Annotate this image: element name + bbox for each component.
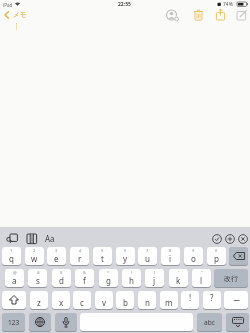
button[interactable]: 7: [138, 247, 157, 265]
staticText: x: [59, 297, 64, 308]
staticText: (: [131, 270, 133, 275]
button[interactable]: v: [95, 291, 113, 309]
staticText: 22:55: [118, 1, 131, 8]
staticText: 74%: [223, 1, 233, 8]
button[interactable]: [55, 313, 77, 331]
button[interactable]: (: [122, 269, 141, 287]
staticText: l: [200, 275, 203, 286]
button[interactable]: 0: [207, 247, 226, 265]
staticText: z: [37, 297, 41, 308]
button[interactable]: *: [99, 269, 118, 287]
button[interactable]: [192, 9, 205, 21]
staticText: &: [83, 270, 86, 275]
staticText: abc: [204, 318, 215, 327]
button[interactable]: [80, 313, 193, 331]
staticText: 123: [8, 318, 20, 327]
button[interactable]: [236, 9, 249, 21]
button[interactable]: [26, 233, 38, 245]
staticText: w: [31, 253, 38, 264]
staticText: c: [80, 297, 84, 308]
button[interactable]: x: [52, 291, 70, 309]
button[interactable]: @: [5, 269, 24, 287]
staticText: Aa: [45, 233, 55, 244]
button[interactable]: !: [181, 291, 199, 309]
button[interactable]: 123: [2, 313, 25, 331]
staticText: 改行: [224, 274, 238, 283]
staticText: 8: [169, 248, 172, 253]
staticText: .: [211, 303, 213, 308]
staticText: 4: [79, 248, 82, 253]
button[interactable]: n: [138, 291, 156, 309]
button[interactable]: b: [116, 291, 134, 309]
button[interactable]: z: [30, 291, 48, 309]
staticText: n: [145, 297, 150, 308]
button[interactable]: #: [28, 269, 47, 287]
staticText: o: [191, 253, 196, 264]
staticText: ): [154, 270, 156, 275]
button[interactable]: [229, 247, 248, 265]
button[interactable]: c: [73, 291, 91, 309]
button[interactable]: [165, 9, 181, 22]
button[interactable]: ': [169, 269, 188, 287]
staticText: v: [102, 297, 107, 308]
staticText: メモ: [13, 11, 27, 19]
button[interactable]: Aa: [45, 232, 61, 245]
staticText: 5: [101, 248, 104, 253]
staticText: e: [54, 253, 59, 264]
button[interactable]: m: [160, 291, 178, 309]
button[interactable]: [214, 8, 227, 21]
staticText: 3: [55, 248, 58, 253]
staticText: s: [36, 275, 40, 286]
staticText: !: [189, 292, 192, 303]
button[interactable]: 4: [70, 247, 89, 265]
button[interactable]: [29, 313, 51, 331]
staticText: 2: [33, 248, 36, 253]
button[interactable]: &: [75, 269, 94, 287]
staticText: 7: [146, 248, 149, 253]
staticText: ー: [233, 296, 240, 305]
staticText: i: [169, 253, 172, 264]
staticText: t: [101, 253, 104, 264]
button[interactable]: 2: [25, 247, 44, 265]
button[interactable]: 3: [47, 247, 66, 265]
button[interactable]: メモ: [2, 9, 30, 21]
button[interactable]: 6: [116, 247, 135, 265]
button[interactable]: 8: [161, 247, 180, 265]
staticText: r: [78, 253, 82, 264]
button[interactable]: 改行: [214, 269, 248, 287]
button[interactable]: 5: [93, 247, 112, 265]
staticText: @: [13, 270, 17, 275]
button[interactable]: [211, 233, 223, 245]
staticText: k: [176, 275, 181, 286]
staticText: y: [123, 253, 128, 264]
staticText: ,: [190, 303, 192, 308]
staticText: p: [214, 253, 219, 264]
button[interactable]: 9: [184, 247, 203, 265]
staticText: ": [201, 270, 203, 275]
button[interactable]: [6, 233, 19, 245]
button[interactable]: ?: [203, 291, 221, 309]
button[interactable]: [2, 291, 26, 309]
button[interactable]: ": [192, 269, 211, 287]
button[interactable]: abc: [197, 313, 222, 331]
button[interactable]: [226, 313, 249, 331]
staticText: iPad: [3, 2, 13, 8]
button[interactable]: [224, 233, 236, 245]
button[interactable]: [237, 233, 249, 245]
button[interactable]: $: [52, 269, 71, 287]
staticText: a: [12, 275, 17, 286]
staticText: u: [145, 253, 150, 264]
staticText: *: [107, 270, 110, 275]
staticText: ?: [210, 292, 214, 303]
button[interactable]: ): [145, 269, 164, 287]
staticText: 0: [215, 248, 218, 253]
staticText: b: [123, 297, 128, 308]
button[interactable]: 1: [2, 247, 21, 265]
staticText: m: [165, 297, 173, 308]
staticText: 9: [192, 248, 195, 253]
staticText: q: [9, 253, 14, 264]
button[interactable]: ー: [224, 291, 248, 309]
staticText: #: [37, 270, 40, 275]
staticText: d: [59, 275, 64, 286]
staticText: f: [83, 275, 86, 286]
